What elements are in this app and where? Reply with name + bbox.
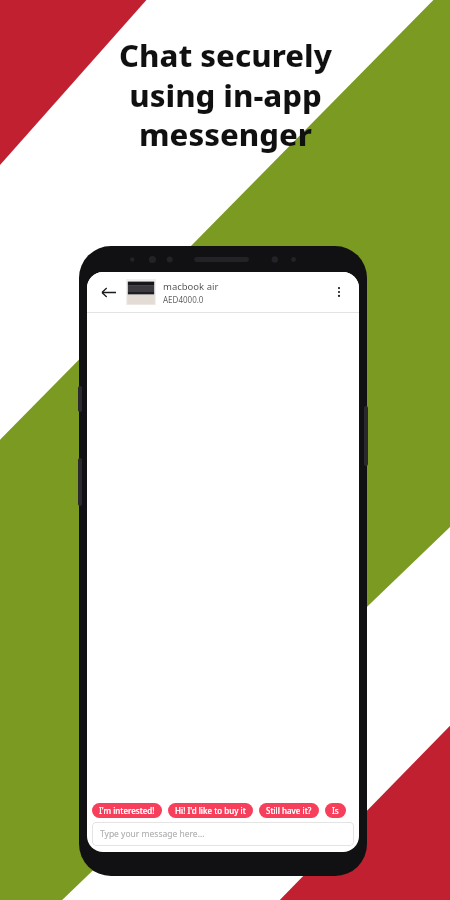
button[interactable]: Type your message here... (92, 822, 354, 846)
staticText: Type your message here... (100, 828, 205, 840)
button[interactable]: Still have it? (259, 803, 319, 818)
staticText: macbook air (163, 280, 219, 293)
button[interactable]: Hi! I'd like to buy it (168, 803, 253, 818)
staticText: Still have it? (266, 805, 312, 816)
staticText: I'm interested! (99, 805, 155, 816)
button[interactable]: I'm interested! (92, 803, 162, 818)
button[interactable]: Back (95, 279, 121, 305)
staticText: Chat securely using in-app messenger (119, 34, 332, 155)
button[interactable]: More options (327, 280, 351, 304)
staticText: Hi! I'd like to buy it (175, 805, 246, 816)
staticText: Is (332, 805, 339, 816)
button[interactable]: Is (325, 803, 346, 818)
staticText: AED4000.0 (163, 294, 204, 305)
